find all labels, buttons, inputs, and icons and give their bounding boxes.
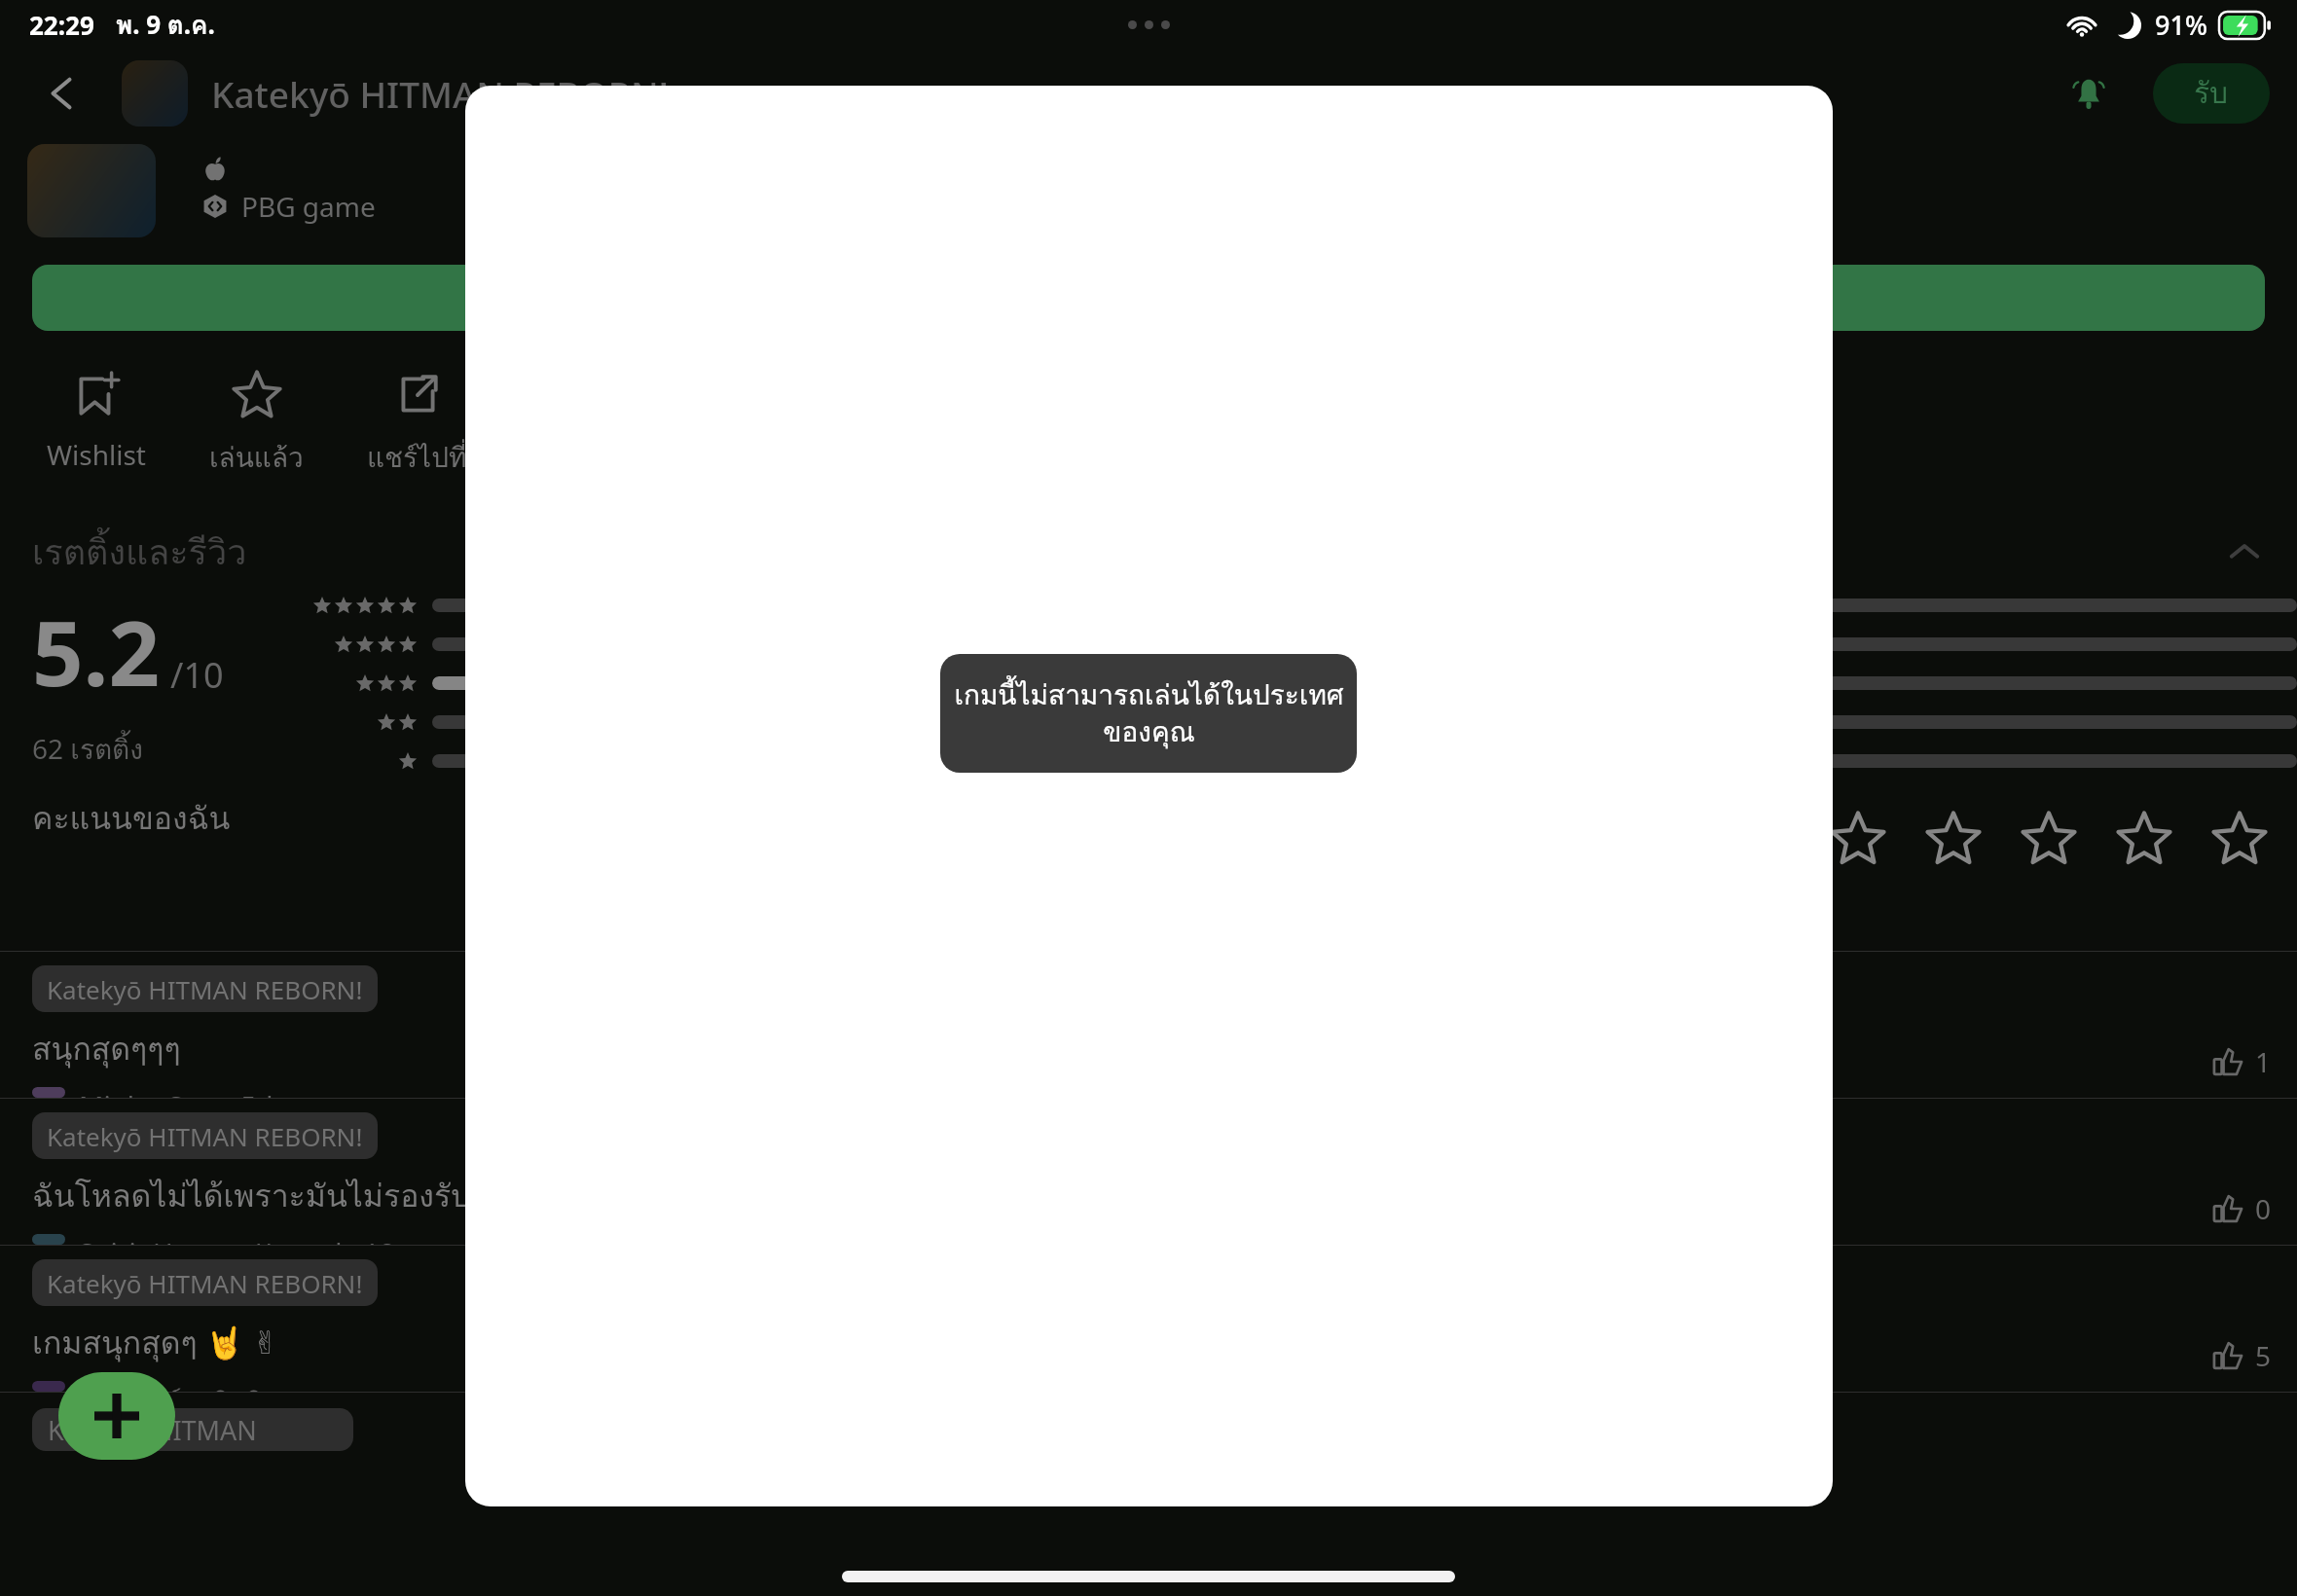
staticText: 62 เรตติ้ง — [32, 728, 143, 772]
button[interactable]: เล่นแล้ว — [176, 364, 337, 486]
staticText: แชร์ไปที่ — [367, 436, 467, 480]
staticText: Katekyō HITMAN REBORN! — [48, 1412, 338, 1448]
staticText: เล่นแล้ว — [209, 436, 304, 480]
staticText: 22:29 — [29, 8, 94, 42]
staticText: MightyStar · 5d — [79, 1087, 273, 1098]
button[interactable]: Rate star — [1824, 805, 1892, 873]
staticText: Katekyō HITMAN REBORN! — [47, 1266, 363, 1300]
button[interactable]: Rate star — [2015, 805, 2083, 873]
staticText: เกมสนุกสุดๆ 🤘 ✌️ — [32, 1318, 278, 1367]
staticText: เกมนี้ไม่สามารถเล่นได้ในประเทศ ของคุณ — [954, 673, 1344, 754]
button[interactable]: 0 — [2212, 1190, 2272, 1227]
button[interactable]: 1 — [2212, 1043, 2272, 1080]
button[interactable]: Wishlist — [16, 364, 176, 479]
button[interactable] — [465, 86, 1833, 1506]
staticText: 91% — [2155, 7, 2207, 43]
staticText: เรตติ้งและรีวิว — [32, 525, 247, 580]
button[interactable]: 5 — [2212, 1337, 2272, 1374]
button[interactable]: แชร์ไปที่ — [337, 364, 497, 486]
staticText: Katekyō HITMAN REBORN! — [47, 1119, 363, 1153]
staticText: Katekyō HITMAN REBORN! — [211, 69, 669, 118]
button[interactable]: Back — [27, 58, 97, 128]
staticText: สนุกสุดๆๆๆ — [32, 1024, 181, 1073]
button[interactable]: Play — [32, 265, 2265, 331]
button[interactable]: Collapse — [2217, 525, 2272, 579]
button[interactable]: Rate star — [1919, 805, 1987, 873]
staticText: รับ — [2194, 70, 2229, 117]
button[interactable]: Rate star — [2206, 805, 2274, 873]
staticText: 0 — [2255, 1190, 2272, 1227]
button[interactable]: Notifications — [2052, 56, 2126, 130]
staticText: พ. 9 ต.ค. — [116, 5, 215, 45]
button[interactable]: Add — [58, 1372, 175, 1460]
staticText: PBG game — [241, 188, 376, 225]
staticText: 1 — [2255, 1043, 2272, 1080]
staticText: อลงกรณ์ เสริมวิเศษ · 09/02/67 — [79, 1381, 443, 1392]
staticText: 5.2 — [32, 591, 161, 712]
button[interactable]: Rate star — [2110, 805, 2178, 873]
staticText: ฉันโหลดไม่ได้เพราะมันไม่รองรับ ฉั — [32, 1171, 500, 1220]
staticText: คะแนนของฉัน — [32, 793, 231, 843]
button[interactable]: รับ — [2153, 63, 2270, 124]
staticText: Katekyō HITMAN REBORN! — [47, 972, 363, 1006]
staticText: Spirit Hunter // g.o.d · 18m — [79, 1234, 420, 1245]
staticText: /10 — [170, 651, 224, 699]
staticText: Wishlist — [47, 436, 146, 473]
staticText: 5 — [2255, 1337, 2272, 1374]
